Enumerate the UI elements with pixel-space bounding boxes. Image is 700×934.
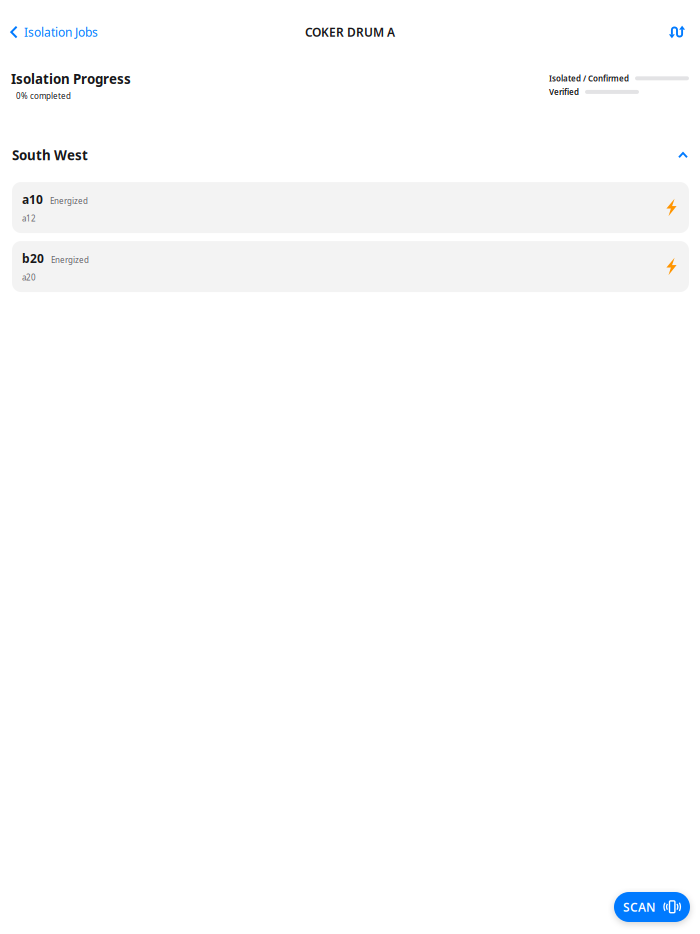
staticText: b20 xyxy=(22,250,44,266)
staticText: Verified xyxy=(549,87,579,97)
button[interactable]: SCAN xyxy=(614,892,690,922)
button[interactable]: a10 xyxy=(12,182,689,233)
staticText: Energized xyxy=(51,254,89,265)
staticText: a12 xyxy=(22,213,36,224)
staticText: South West xyxy=(12,146,88,164)
staticText: Energized xyxy=(50,195,88,206)
staticText: COKER DRUM A xyxy=(305,24,395,40)
staticText: Isolation Progress xyxy=(11,70,131,88)
staticText: a10 xyxy=(22,191,43,207)
button[interactable]: Isolation Jobs xyxy=(0,6,108,58)
staticText: 0% completed xyxy=(16,91,71,101)
staticText: a20 xyxy=(22,272,36,283)
button[interactable]: b20 xyxy=(12,241,689,292)
staticText: Isolation Jobs xyxy=(24,24,98,40)
button[interactable]: Reorder xyxy=(654,6,700,58)
staticText: SCAN xyxy=(623,899,656,915)
button[interactable]: South West xyxy=(0,101,700,182)
staticText: Isolated / Confirmed xyxy=(549,73,629,84)
